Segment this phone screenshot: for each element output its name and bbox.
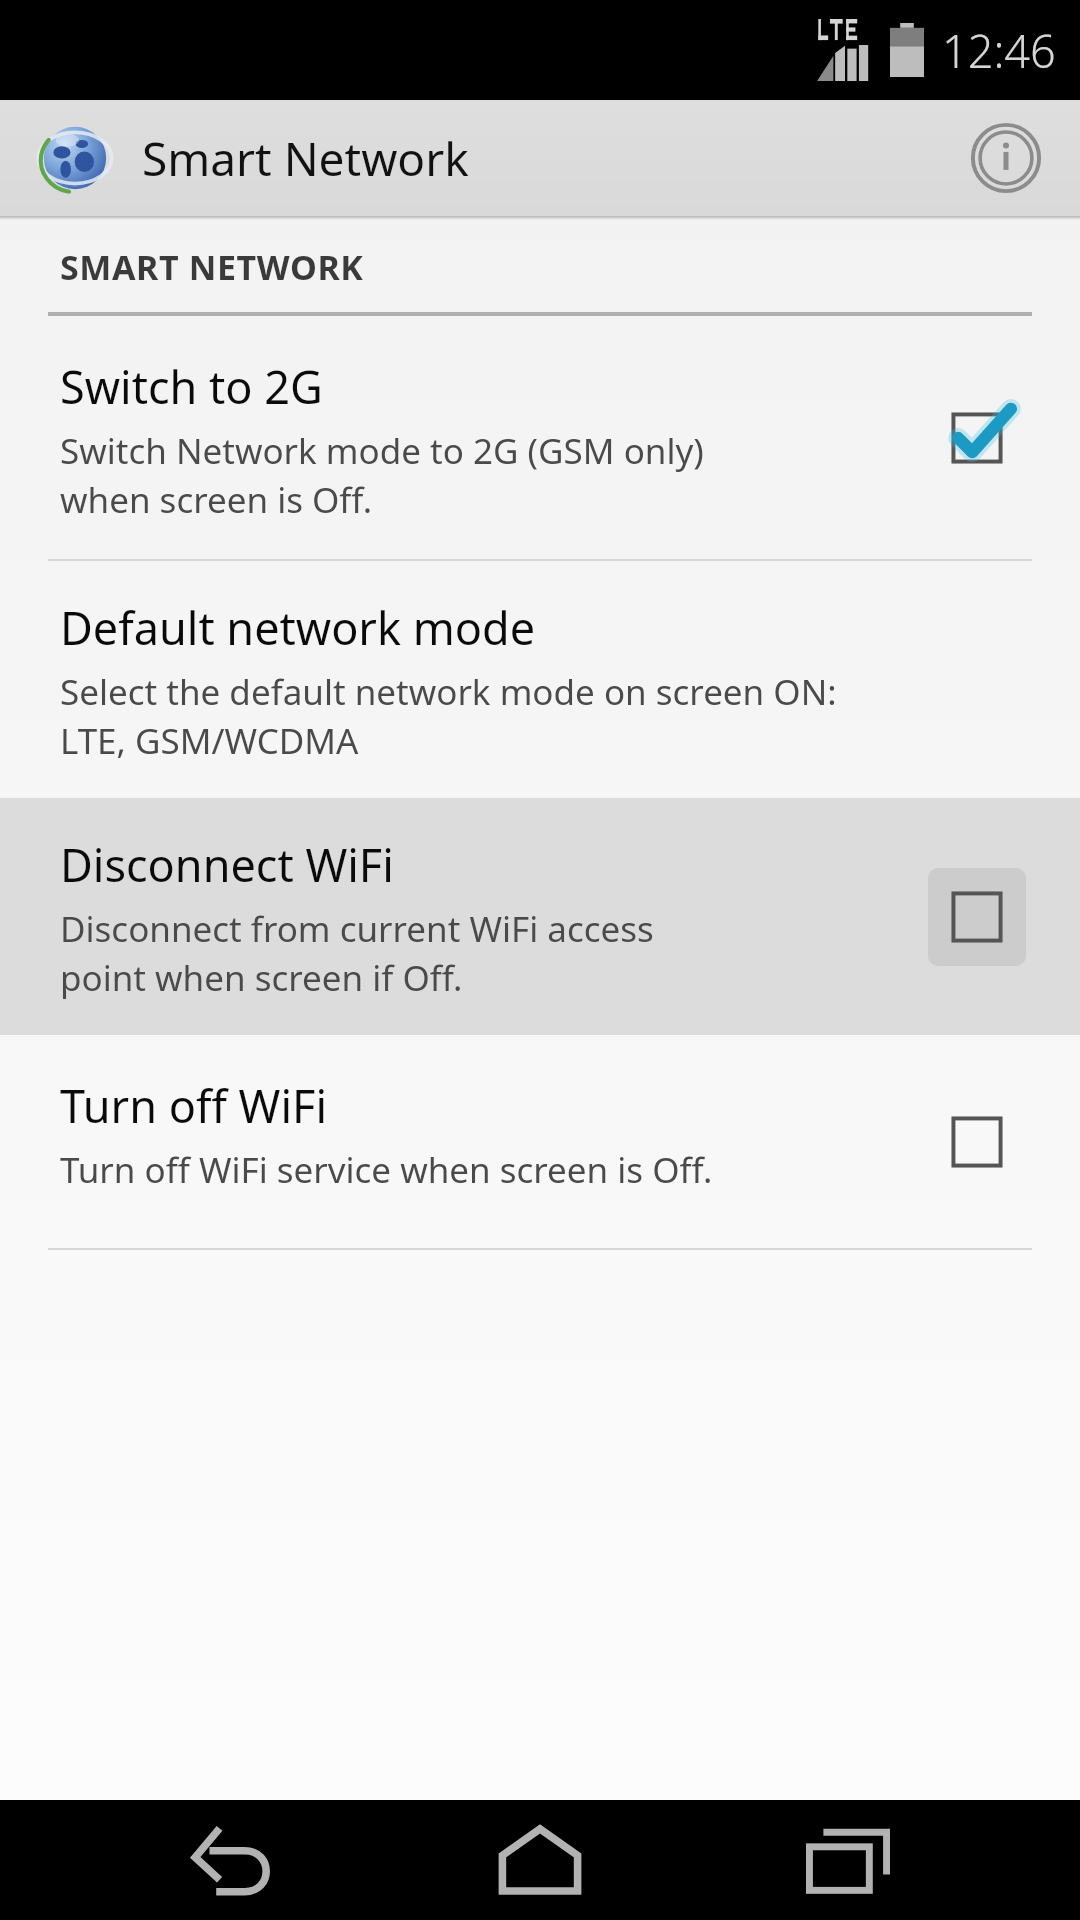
button[interactable]: Turn off WiFi <box>0 1035 1080 1248</box>
staticText: Turn off WiFi service when screen is Off… <box>60 1146 713 1194</box>
button[interactable]: Default network mode <box>0 561 1080 798</box>
button[interactable]: Switch to 2G <box>0 316 1080 559</box>
staticText: 12:46 <box>942 20 1056 81</box>
button[interactable]: Back <box>158 1800 308 1920</box>
staticText: SMART NETWORK <box>60 244 364 290</box>
button[interactable]: Home <box>465 1800 615 1920</box>
button[interactable]: Recent apps <box>773 1800 923 1920</box>
button[interactable]: Disconnect WiFi <box>0 798 1080 1035</box>
staticText: Turn off WiFi <box>60 1075 327 1136</box>
staticText: Disconnect WiFi <box>60 834 394 895</box>
staticText: Default network mode <box>60 597 536 658</box>
staticText: Switch Network mode to 2G (GSM only) whe… <box>60 427 704 523</box>
staticText: Smart Network <box>142 127 469 190</box>
staticText: Disconnect from current WiFi access poin… <box>60 905 654 1001</box>
staticText: Select the default network mode on scree… <box>60 668 837 764</box>
staticText: Switch to 2G <box>60 356 323 417</box>
button[interactable]: About this app <box>960 112 1052 204</box>
